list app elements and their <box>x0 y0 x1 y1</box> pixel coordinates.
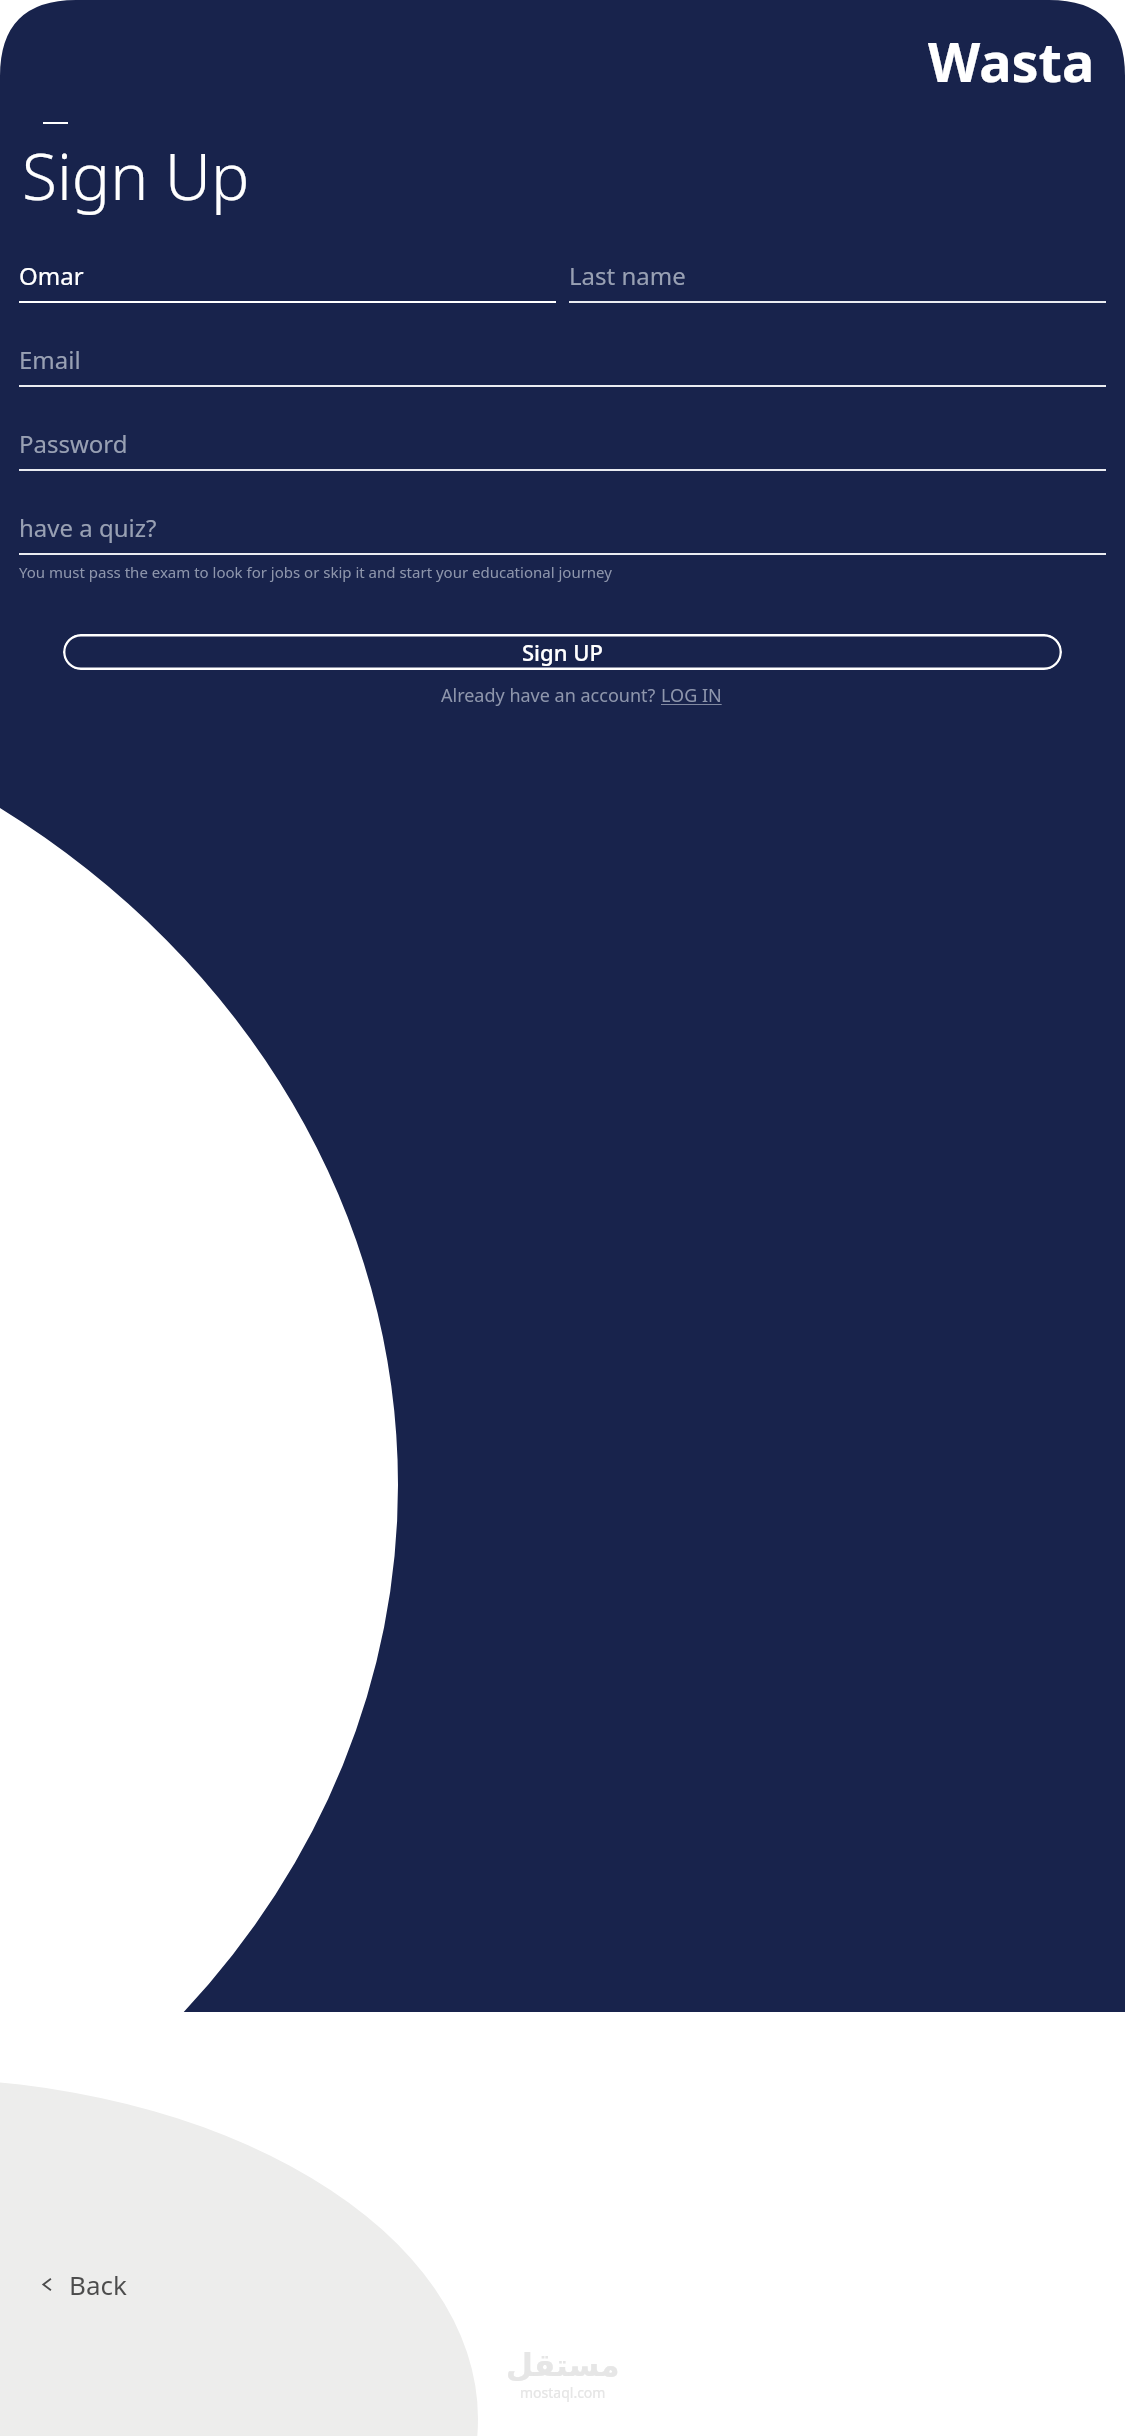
button[interactable]: LOG IN <box>661 683 722 708</box>
staticText: have a quiz? <box>19 511 157 544</box>
button[interactable]: have a quiz? <box>19 511 1106 555</box>
button[interactable]: Omar <box>19 259 556 303</box>
staticText: مستقل <box>506 2347 620 2383</box>
staticText: mostaql.com <box>520 2383 606 2402</box>
button[interactable]: Sign UP <box>63 634 1062 670</box>
button[interactable]: Back <box>32 2259 133 2310</box>
staticText: Sign Up <box>22 132 250 219</box>
staticText: LOG IN <box>661 683 722 708</box>
staticText: Wasta <box>928 24 1095 98</box>
button[interactable]: Wasta <box>922 18 1101 104</box>
staticText: Omar <box>19 259 84 292</box>
staticText: Back <box>69 2267 127 2302</box>
button[interactable]: Password <box>19 427 1106 471</box>
staticText: Sign UP <box>522 637 603 667</box>
staticText: Password <box>19 427 128 460</box>
staticText: You must pass the exam to look for jobs … <box>19 562 612 582</box>
staticText: Email <box>19 343 81 376</box>
button[interactable]: Email <box>19 343 1106 387</box>
other: Back <box>38 2275 57 2294</box>
staticText: Last name <box>569 259 686 292</box>
staticText: Already have an account? <box>441 683 661 708</box>
button[interactable]: Last name <box>569 259 1106 303</box>
